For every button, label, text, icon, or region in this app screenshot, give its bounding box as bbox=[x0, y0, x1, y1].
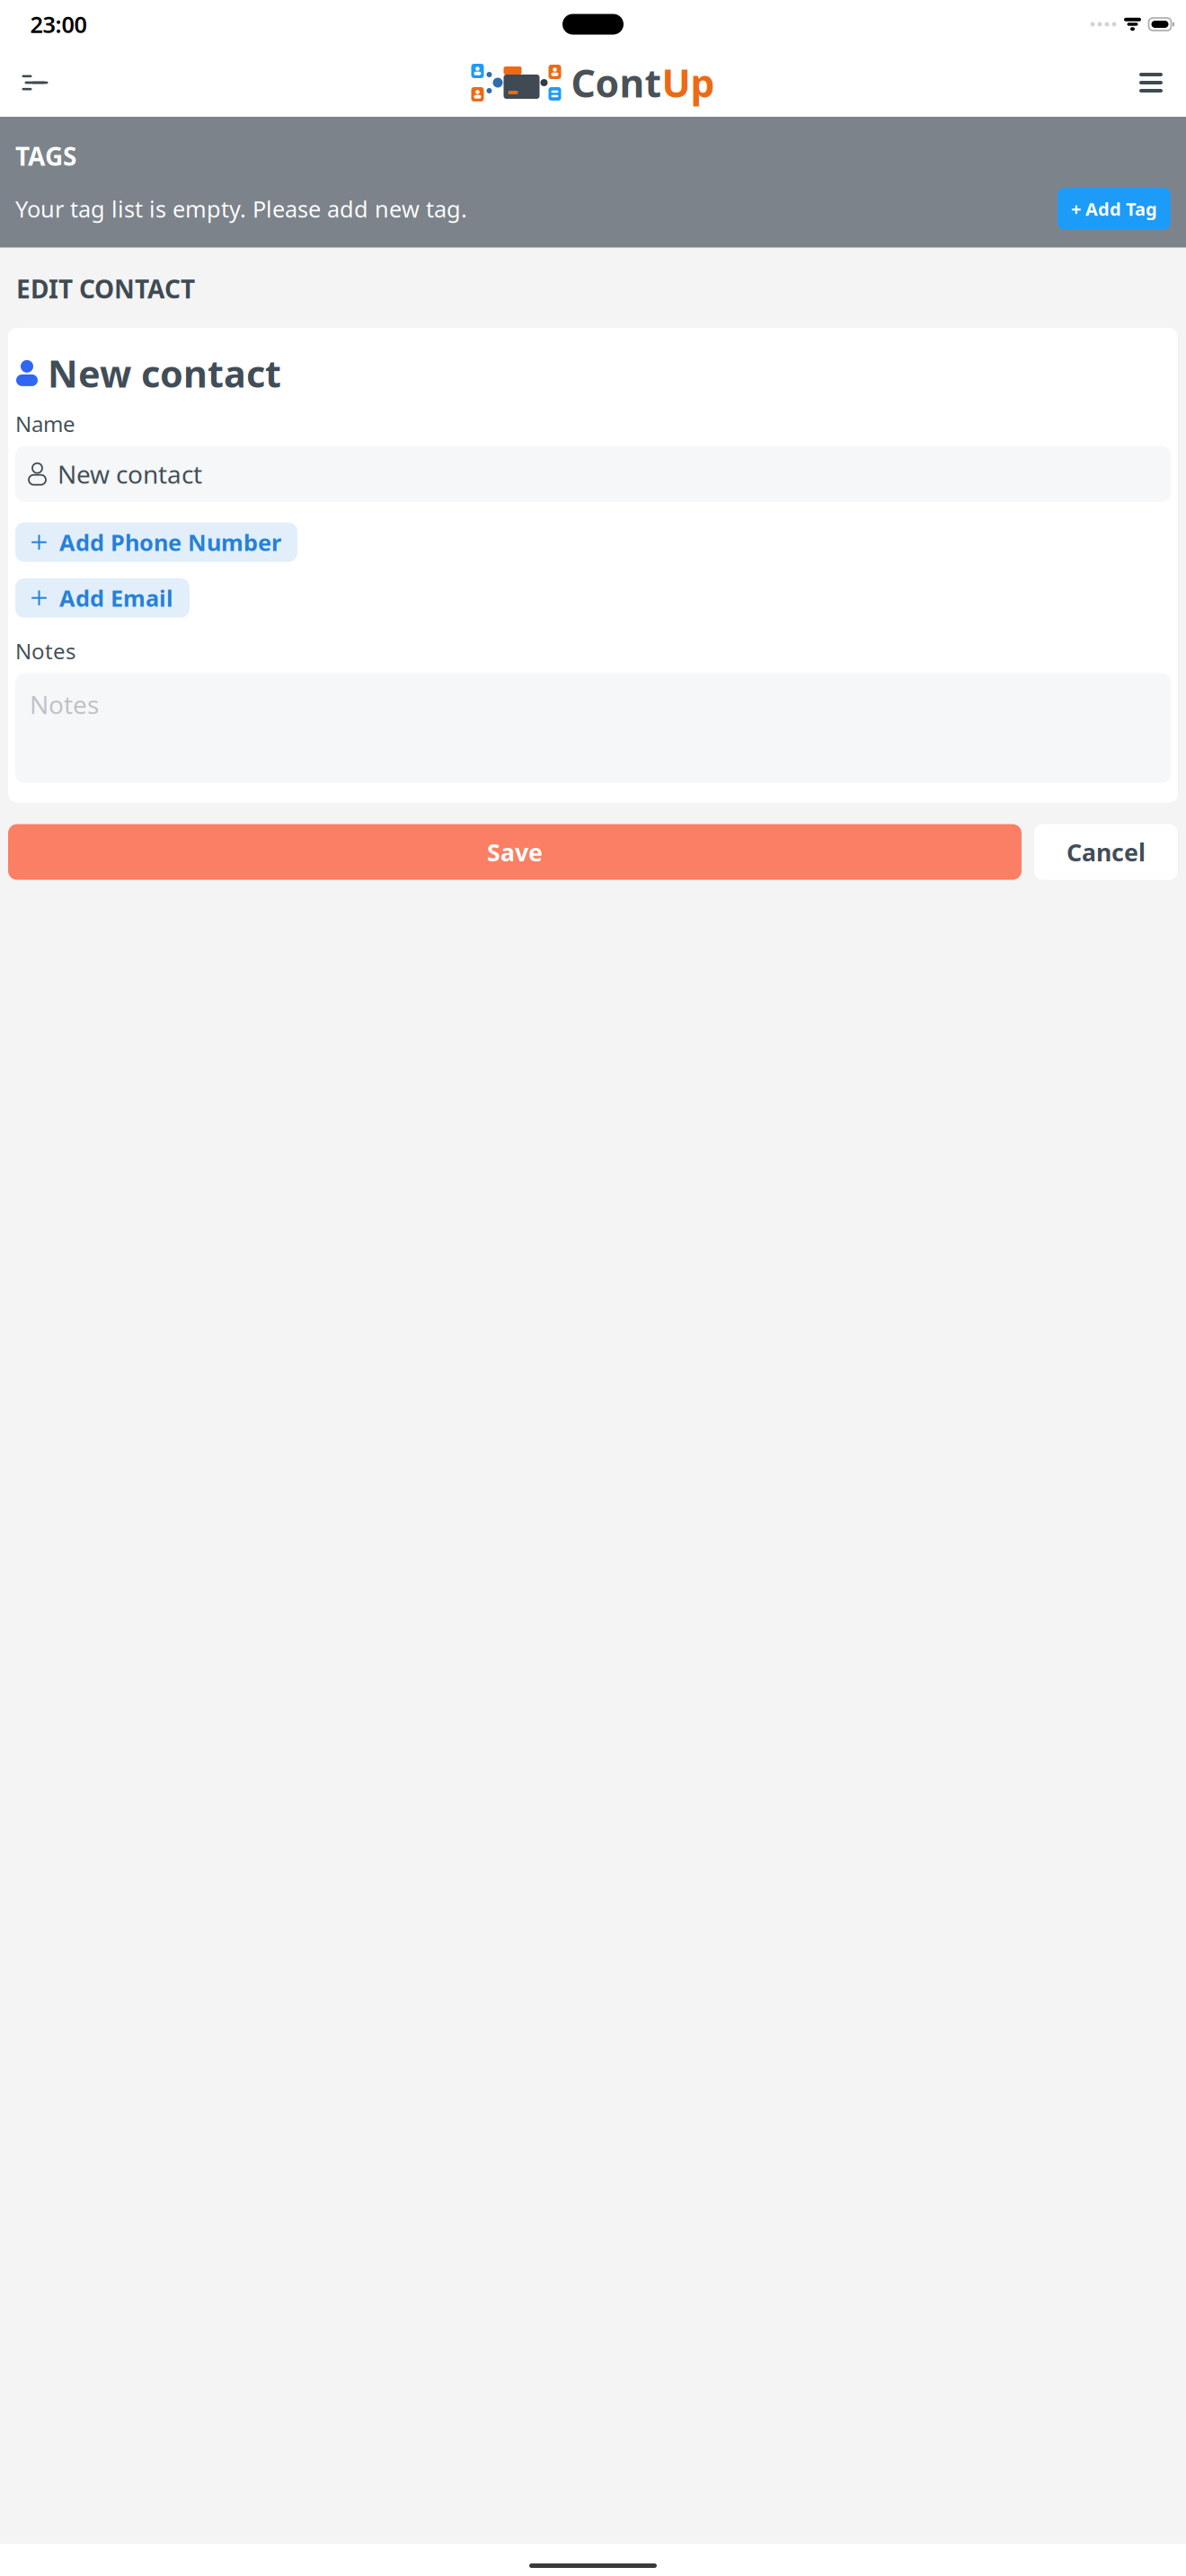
staticText: Your tag list is empty. Please add new t… bbox=[15, 194, 467, 224]
button[interactable]: + Add Tag bbox=[1058, 188, 1171, 230]
staticText: Notes bbox=[15, 637, 75, 665]
button[interactable]: Add Phone Number bbox=[15, 522, 297, 562]
button[interactable]: Add Email bbox=[15, 578, 190, 618]
staticText: New contact bbox=[58, 457, 202, 491]
staticText: Name bbox=[15, 409, 75, 438]
button[interactable]: Cancel bbox=[1034, 824, 1178, 880]
staticText: Add Phone Number bbox=[59, 527, 281, 557]
button[interactable]: ContUp bbox=[471, 57, 715, 108]
staticText: Save bbox=[487, 836, 543, 868]
staticText: EDIT CONTACT bbox=[16, 272, 195, 305]
staticText: 23:00 bbox=[30, 9, 87, 39]
staticText: + Add Tag bbox=[1071, 197, 1157, 221]
button[interactable]: Menu bbox=[1126, 59, 1176, 106]
staticText: New contact bbox=[48, 348, 281, 398]
staticText: Notes bbox=[30, 688, 99, 721]
button[interactable]: Save bbox=[8, 824, 1022, 880]
staticText: TAGS bbox=[15, 139, 76, 173]
button[interactable]: Back bbox=[10, 59, 60, 106]
staticText: Add Email bbox=[59, 583, 173, 613]
staticText: Cancel bbox=[1067, 836, 1146, 868]
staticText: Cont bbox=[571, 57, 662, 108]
staticText: Up bbox=[662, 57, 715, 108]
